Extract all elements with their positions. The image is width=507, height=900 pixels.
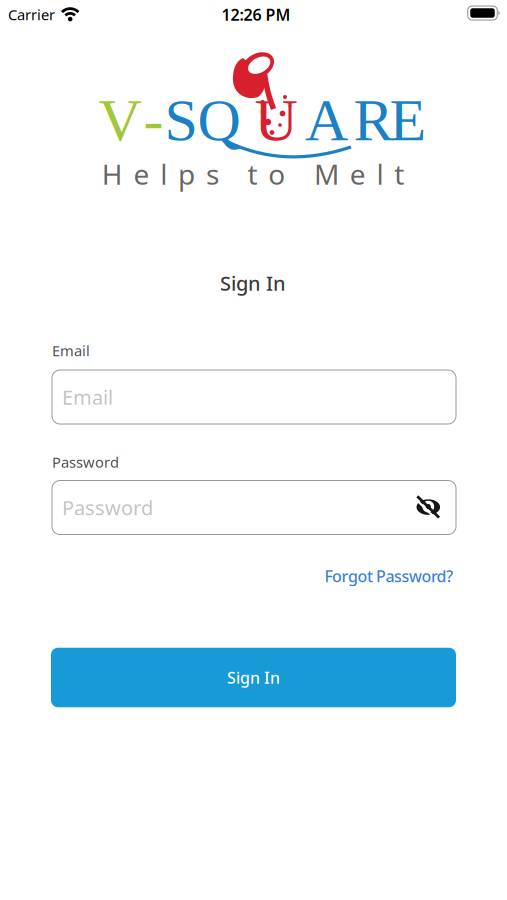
staticText: Sign In	[220, 270, 286, 296]
staticText: Email	[62, 384, 113, 410]
staticText: Password	[62, 494, 153, 521]
staticText: A	[305, 87, 348, 153]
staticText: -	[143, 87, 163, 153]
staticText: Helps to Melt	[102, 155, 404, 193]
button[interactable]: Show password	[411, 492, 445, 522]
staticText: Password	[52, 452, 119, 472]
staticText: V	[98, 87, 141, 153]
staticText: 12:26 PM	[221, 4, 290, 25]
staticText: R	[353, 87, 393, 153]
staticText: Q	[197, 87, 240, 153]
staticText: S	[164, 87, 197, 153]
staticText: U	[254, 87, 297, 153]
button[interactable]: Email	[52, 370, 456, 424]
button[interactable]: Forgot Password?	[0, 565, 453, 587]
staticText: Carrier	[8, 5, 55, 24]
staticText: Email	[52, 341, 90, 360]
staticText: Forgot Password?	[324, 565, 453, 587]
staticText: Sign In	[227, 667, 280, 688]
button[interactable]: Sign In	[51, 648, 456, 707]
button[interactable]: Password	[52, 480, 456, 534]
staticText: E	[389, 87, 426, 153]
